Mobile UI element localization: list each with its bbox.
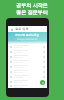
staticText: 공부의 시작은	[16, 2, 48, 9]
button[interactable]	[8, 49, 47, 54]
staticText: 무엇이든 물어보세요	[15, 33, 40, 37]
button[interactable]	[8, 54, 47, 59]
button[interactable]	[8, 84, 47, 88]
button[interactable]	[8, 64, 47, 69]
button[interactable]: Ask a question	[40, 80, 45, 85]
button[interactable]	[8, 79, 47, 84]
staticText: 좋은 질문부터	[16, 9, 48, 16]
staticText: 선생님이 답해드립니다	[17, 38, 38, 41]
staticText: 질문 목록	[15, 27, 29, 31]
button[interactable]	[8, 44, 47, 49]
button[interactable]	[8, 69, 47, 74]
button[interactable]: Menu	[10, 28, 13, 31]
button[interactable]	[8, 74, 47, 79]
button[interactable]	[8, 59, 47, 64]
